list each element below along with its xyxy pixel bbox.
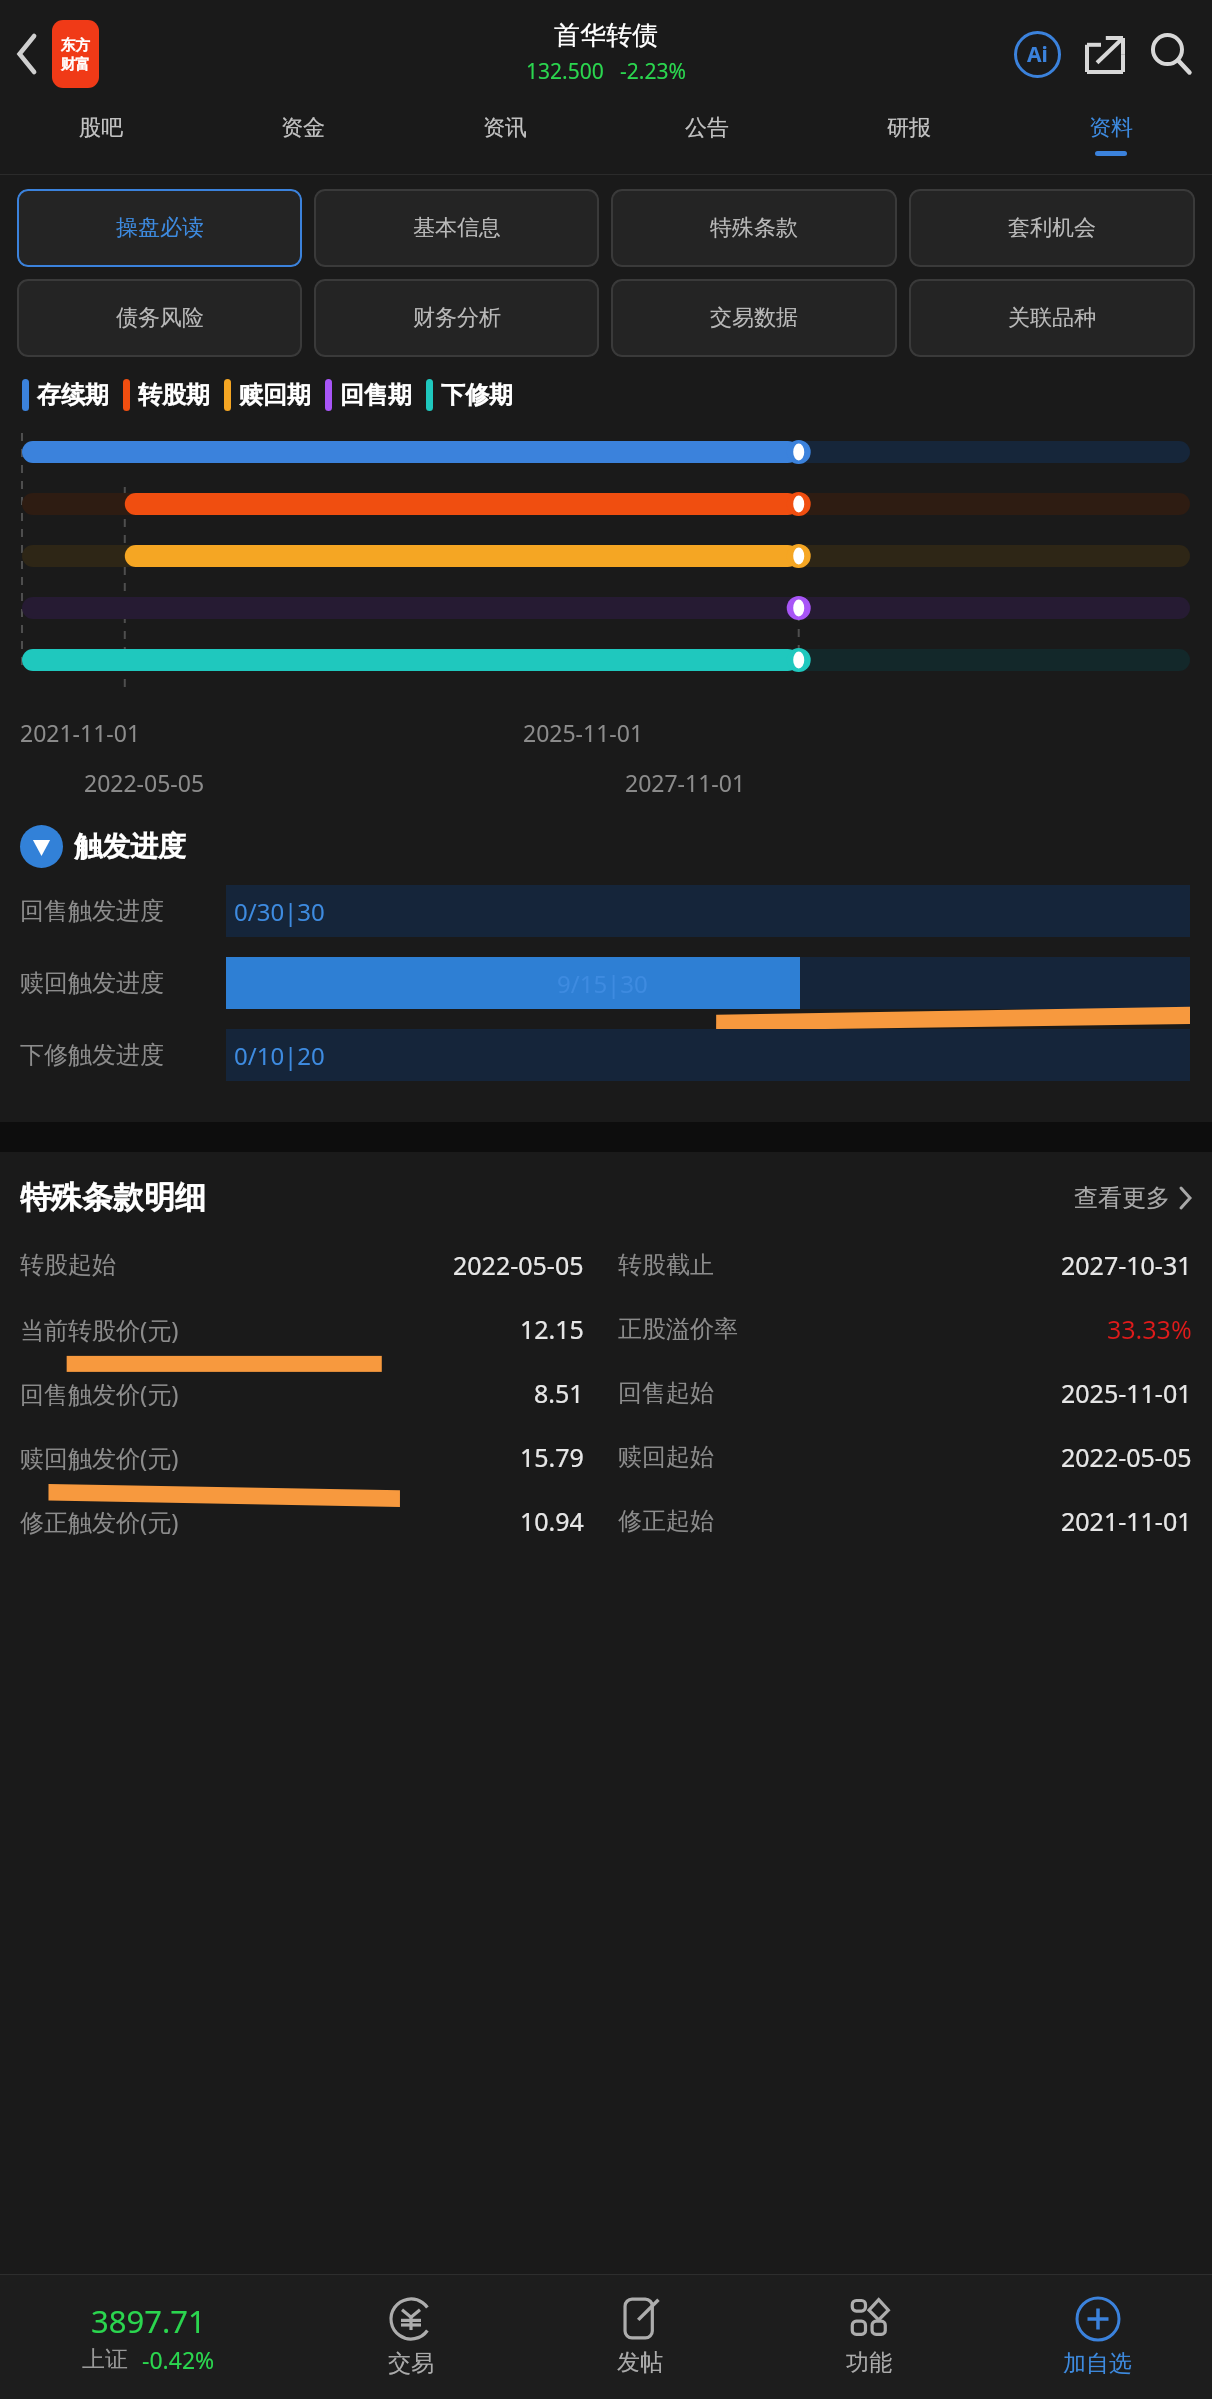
staticText: 正股溢价率 bbox=[618, 1314, 738, 1344]
button[interactable]: 特殊条款 bbox=[611, 189, 897, 267]
button[interactable]: Share bbox=[1076, 25, 1134, 83]
button[interactable]: 研报 bbox=[808, 108, 1010, 174]
staticText: 2022-05-05 bbox=[453, 1248, 584, 1282]
staticText: 股吧 bbox=[79, 114, 123, 142]
staticText: 东方 bbox=[61, 36, 90, 54]
staticText: 赎回触发价(元) bbox=[20, 1441, 179, 1474]
staticText: 2027-10-31 bbox=[1061, 1248, 1192, 1282]
staticText: 存续期 bbox=[37, 380, 109, 410]
staticText: 10.94 bbox=[520, 1504, 584, 1538]
staticText: 转股起始 bbox=[20, 1250, 116, 1280]
staticText: 12.15 bbox=[520, 1312, 584, 1346]
staticText: -2.23% bbox=[620, 57, 686, 86]
staticText: 回售期 bbox=[340, 380, 412, 410]
staticText: 研报 bbox=[887, 114, 931, 142]
staticText: 交易数据 bbox=[710, 304, 798, 332]
staticText: 赎回触发进度 bbox=[20, 968, 212, 998]
button[interactable]: Back bbox=[0, 0, 54, 108]
staticText: 基本信息 bbox=[413, 214, 501, 242]
staticText: 8.51 bbox=[534, 1376, 584, 1410]
staticText: 操盘必读 bbox=[116, 214, 204, 242]
staticText: 2022-05-05 bbox=[84, 767, 205, 798]
staticText: 资金 bbox=[281, 114, 325, 142]
staticText: 下修期 bbox=[441, 380, 513, 410]
staticText: 2021-11-01 bbox=[1061, 1504, 1192, 1538]
button[interactable]: 财务分析 bbox=[314, 279, 599, 357]
staticText: 9/15|30 bbox=[557, 967, 648, 1000]
button[interactable]: 赎回触发价(元) bbox=[20, 1425, 1192, 1489]
button[interactable]: 下修触发进度 bbox=[20, 1022, 1190, 1088]
button[interactable]: 交易数据 bbox=[611, 279, 897, 357]
staticText: 2021-11-01 bbox=[20, 717, 141, 748]
button[interactable]: 套利机会 bbox=[909, 189, 1195, 267]
staticText: 首华转债 bbox=[554, 19, 658, 52]
staticText: 转股截止 bbox=[618, 1250, 714, 1280]
button[interactable]: 公告 bbox=[606, 108, 808, 174]
staticText: 交易 bbox=[388, 2349, 434, 2378]
button[interactable]: 查看更多 bbox=[1074, 1183, 1192, 1213]
staticText: 赎回期 bbox=[239, 380, 311, 410]
staticText: 赎回起始 bbox=[618, 1442, 714, 1472]
staticText: 回售触发进度 bbox=[20, 896, 212, 926]
staticText: 发帖 bbox=[617, 2348, 663, 2377]
staticText: 加自选 bbox=[1063, 2349, 1132, 2378]
staticText: 0/30|30 bbox=[234, 895, 325, 928]
button[interactable]: 回售触发进度 bbox=[20, 878, 1190, 944]
staticText: 当前转股价(元) bbox=[20, 1313, 179, 1346]
button[interactable]: 关联品种 bbox=[909, 279, 1195, 357]
button[interactable]: 修正触发价(元) bbox=[20, 1489, 1192, 1553]
button[interactable]: 发帖 bbox=[525, 2275, 754, 2399]
staticText: 回售起始 bbox=[618, 1378, 714, 1408]
staticText: -0.42% bbox=[142, 2344, 215, 2375]
staticText: 修正触发价(元) bbox=[20, 1505, 179, 1538]
button[interactable]: Search bbox=[1140, 23, 1202, 85]
staticText: 转股期 bbox=[138, 380, 210, 410]
button[interactable]: AI assistant bbox=[1008, 25, 1066, 83]
staticText: 132.500 bbox=[526, 57, 604, 86]
button[interactable]: 资料 bbox=[1010, 108, 1212, 174]
staticText: 套利机会 bbox=[1008, 214, 1096, 242]
staticText: 功能 bbox=[846, 2348, 892, 2377]
button[interactable]: 加自选 bbox=[983, 2275, 1212, 2399]
button[interactable]: 资讯 bbox=[404, 108, 606, 174]
staticText: 2025-11-01 bbox=[523, 717, 644, 748]
staticText: 资料 bbox=[1089, 114, 1133, 142]
button[interactable]: 资金 bbox=[202, 108, 404, 174]
button[interactable]: 功能 bbox=[754, 2275, 983, 2399]
button[interactable]: 当前转股价(元) bbox=[20, 1297, 1192, 1361]
staticText: 2027-11-01 bbox=[625, 767, 746, 798]
staticText: 特殊条款 bbox=[710, 214, 798, 242]
button[interactable]: East Money home bbox=[52, 20, 99, 88]
staticText: 查看更多 bbox=[1074, 1183, 1170, 1213]
staticText: 3897.71 bbox=[91, 2300, 206, 2342]
button[interactable]: 回售触发价(元) bbox=[20, 1361, 1192, 1425]
staticText: 特殊条款明细 bbox=[20, 1178, 206, 1217]
button[interactable]: 转股起始 bbox=[20, 1233, 1192, 1297]
staticText: 0/10|20 bbox=[234, 1039, 325, 1072]
button[interactable]: 基本信息 bbox=[314, 189, 599, 267]
staticText: 15.79 bbox=[520, 1440, 584, 1474]
button[interactable]: 股吧 bbox=[0, 108, 202, 174]
staticText: Ai bbox=[1027, 40, 1048, 69]
staticText: 债务风险 bbox=[116, 304, 204, 332]
staticText: 财富 bbox=[61, 55, 90, 73]
staticText: 33.33% bbox=[1107, 1312, 1192, 1346]
staticText: 公告 bbox=[685, 114, 729, 142]
staticText: 2025-11-01 bbox=[1061, 1376, 1192, 1410]
button[interactable]: 交易 bbox=[296, 2275, 525, 2399]
button[interactable]: 赎回触发进度 bbox=[20, 950, 1190, 1016]
staticText: 下修触发进度 bbox=[20, 1040, 212, 1070]
staticText: 2022-05-05 bbox=[1061, 1440, 1192, 1474]
staticText: 资讯 bbox=[483, 114, 527, 142]
staticText: 修正起始 bbox=[618, 1506, 714, 1536]
button[interactable]: 操盘必读 bbox=[17, 189, 302, 267]
staticText: 回售触发价(元) bbox=[20, 1377, 179, 1410]
button[interactable]: 3897.71 bbox=[0, 2275, 296, 2399]
staticText: 触发进度 bbox=[74, 829, 186, 864]
staticText: 关联品种 bbox=[1008, 304, 1096, 332]
staticText: 上证 bbox=[82, 2345, 128, 2374]
button[interactable]: 债务风险 bbox=[17, 279, 302, 357]
staticText: 财务分析 bbox=[413, 304, 501, 332]
